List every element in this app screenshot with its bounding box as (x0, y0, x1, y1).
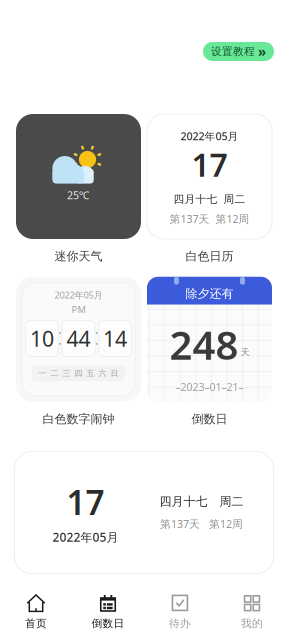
button[interactable]: 首页 (0, 585, 72, 640)
staticText: 第137天 第12周 (169, 212, 249, 226)
staticText: 迷你天气 (54, 249, 102, 264)
staticText: 除夕还有 (185, 286, 233, 301)
staticText: 倒数日 (91, 617, 124, 630)
button[interactable]: 待办 (144, 585, 216, 640)
staticText: 四月十七 周二 (159, 494, 243, 509)
staticText: 一 二 三 四 五 六 日 (38, 368, 118, 378)
staticText: 我的 (241, 617, 263, 630)
button[interactable]: 设置教程 (203, 42, 274, 61)
staticText: 10 (30, 324, 54, 353)
staticText: –2023–01–21– (175, 380, 243, 394)
staticText: 待办 (169, 617, 191, 630)
button[interactable]: 17 (14, 451, 273, 573)
button[interactable]: 2022年05月 (147, 114, 272, 264)
staticText: 首页 (25, 617, 47, 630)
button[interactable]: 2022年05月 (16, 277, 141, 426)
staticText: 白色数字闹钟 (42, 412, 114, 426)
staticText: 2022年05月 (54, 289, 102, 301)
staticText: 四月十七 周二 (173, 193, 245, 206)
staticText: 2022年05月 (180, 129, 238, 143)
button[interactable]: 25℃ (16, 114, 141, 264)
staticText: 倒数日 (191, 412, 227, 426)
button[interactable]: 我的 (216, 585, 288, 640)
staticText: 248 (169, 318, 238, 371)
button[interactable]: 倒数日 (72, 585, 144, 640)
staticText: 44 (66, 324, 90, 353)
staticText: 17 (66, 480, 104, 524)
staticText: 设置教程 (211, 45, 255, 58)
staticText: 17 (191, 143, 227, 186)
staticText: 白色日历 (185, 249, 233, 264)
staticText: 第137天 第12周 (160, 517, 243, 531)
staticText: PM (71, 303, 85, 315)
staticText: 2022年05月 (52, 529, 118, 545)
staticText: 25℃ (67, 188, 90, 202)
button[interactable]: 除夕还有 (147, 277, 272, 426)
staticText: 天 (240, 346, 249, 358)
staticText: 14 (103, 324, 127, 353)
staticText: » (258, 43, 266, 60)
